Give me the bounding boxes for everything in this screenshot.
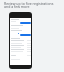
staticText: Review up to five registrations bbox=[4, 1, 54, 6]
staticText: and a few more bbox=[4, 4, 30, 9]
